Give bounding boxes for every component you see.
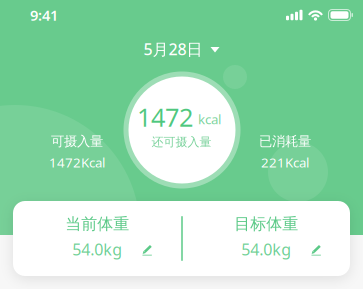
staticText: 9:41 — [30, 5, 58, 25]
button[interactable]: 5月28日 — [0, 39, 363, 59]
staticText: 可摄入量 — [51, 133, 103, 149]
staticText: 目标体重 — [234, 214, 298, 234]
staticText: 221Kcal — [261, 153, 309, 171]
staticText: 54.0kg — [241, 239, 291, 260]
staticText: 1472Kcal — [49, 153, 105, 171]
staticText: 当前体重 — [65, 214, 129, 234]
staticText: 5月28日 — [143, 38, 202, 60]
button[interactable]: 编辑当前体重 — [13, 201, 181, 276]
staticText: kcal — [198, 110, 221, 128]
staticText: 1472 — [137, 100, 193, 134]
staticText: 还可摄入量 — [151, 135, 211, 149]
staticText: 已消耗量 — [259, 133, 311, 149]
button[interactable]: 编辑目标体重 — [183, 201, 350, 276]
staticText: 54.0kg — [72, 239, 122, 260]
